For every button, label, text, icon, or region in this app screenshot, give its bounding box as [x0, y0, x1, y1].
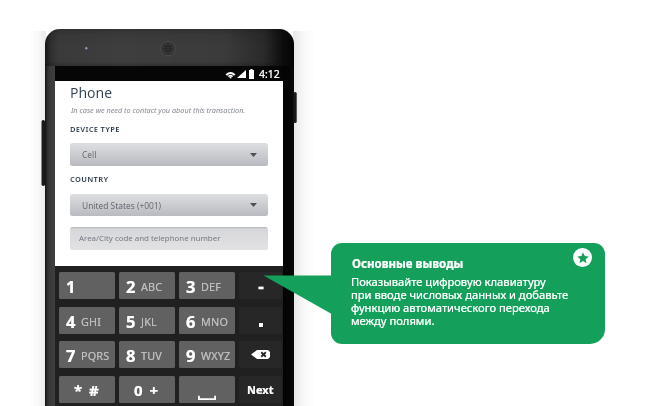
button[interactable]: 6	[179, 307, 235, 334]
staticText: ABC	[141, 279, 163, 294]
button[interactable]: 0 +	[119, 376, 175, 403]
button[interactable]: * #	[59, 376, 115, 403]
staticText: MNO	[201, 314, 229, 329]
button[interactable]: 1	[59, 272, 115, 299]
button[interactable]: Period	[239, 307, 282, 334]
staticText: TUV	[141, 348, 162, 363]
staticText: 9	[186, 344, 196, 366]
other: Space	[198, 387, 216, 401]
button[interactable]: 8	[119, 341, 175, 368]
staticText: GHI	[81, 314, 102, 329]
staticText: DEVICE TYPE	[70, 124, 120, 134]
staticText: Показывайте цифровую клавиатуру при ввод…	[351, 274, 569, 329]
staticText: 7	[66, 344, 76, 366]
staticText: * #	[74, 380, 101, 400]
button[interactable]: 2	[119, 272, 175, 299]
staticText: DEF	[201, 279, 222, 294]
staticText: United States (+001)	[82, 200, 162, 211]
button[interactable]: Delete	[239, 341, 282, 368]
staticText: 3	[186, 275, 196, 297]
staticText: 8	[126, 344, 136, 366]
staticText: Cell	[82, 149, 97, 160]
other: Dash	[252, 279, 270, 297]
staticText: 5	[126, 310, 136, 332]
staticText: Phone	[70, 83, 113, 102]
staticText: JKL	[141, 314, 157, 329]
staticText: COUNTRY	[70, 174, 109, 184]
button[interactable]: Cell	[70, 143, 268, 166]
button[interactable]: 5	[119, 307, 175, 334]
staticText: 1	[66, 275, 76, 297]
staticText: 4	[66, 310, 76, 332]
staticText: 6	[186, 310, 196, 332]
button[interactable]: Area/City code and telephone number	[70, 227, 268, 250]
staticText: Area/City code and telephone number	[79, 233, 221, 244]
staticText: PQRS	[81, 348, 110, 363]
other: Period	[252, 316, 270, 334]
button[interactable]: 7	[59, 341, 115, 368]
button[interactable]: United States (+001)	[70, 194, 268, 216]
other: Delete	[251, 350, 270, 359]
button[interactable]: 3	[179, 272, 235, 299]
button[interactable]: 4	[59, 307, 115, 334]
staticText: In case we need to contact you about thi…	[71, 105, 246, 115]
staticText: 2	[126, 275, 136, 297]
staticText: 4:12	[259, 67, 280, 81]
staticText: 0 +	[134, 380, 160, 400]
button[interactable]: Space	[179, 376, 235, 403]
button[interactable]: Next	[239, 376, 282, 403]
button[interactable]: Dash	[239, 272, 282, 299]
button[interactable]: Key takeaway	[573, 248, 592, 267]
staticText: Основные выводы	[352, 256, 464, 272]
staticText: Next	[247, 382, 274, 397]
staticText: WXYZ	[201, 348, 231, 363]
button[interactable]: 9	[179, 341, 235, 368]
